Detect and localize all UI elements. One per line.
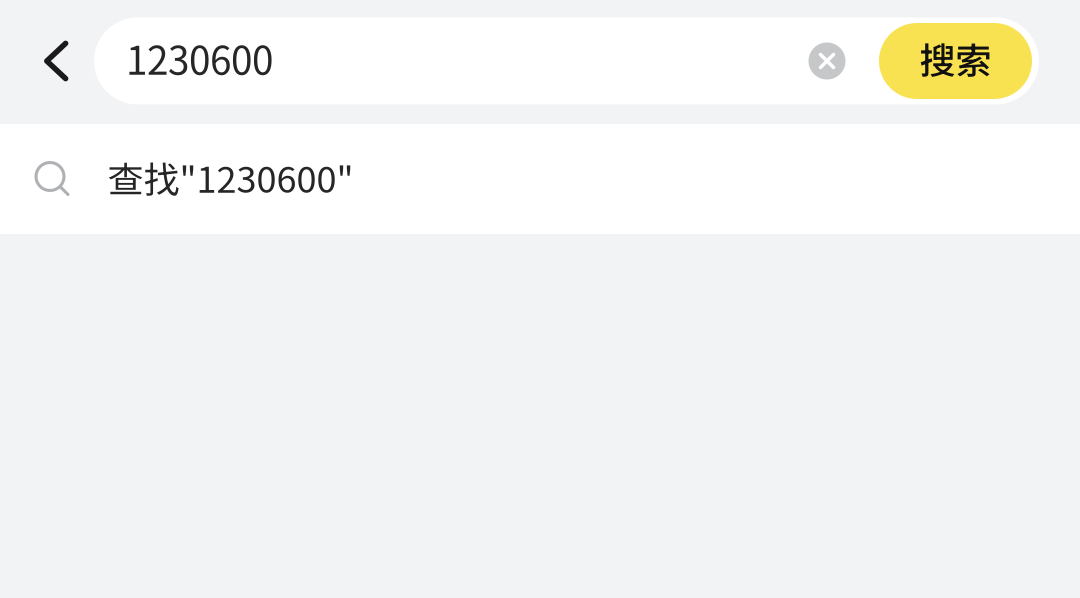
button[interactable]: Back [0, 17, 94, 105]
button[interactable]: Clear text [775, 17, 879, 104]
staticText: 查找"1230600" [107, 151, 353, 203]
button[interactable]: 搜索 [879, 23, 1032, 99]
staticText: 1230600 [126, 30, 273, 86]
staticText: 搜索 [919, 32, 991, 84]
button[interactable]: 查找"1230600" [0, 124, 1080, 234]
button[interactable]: 1230600 [126, 17, 775, 104]
